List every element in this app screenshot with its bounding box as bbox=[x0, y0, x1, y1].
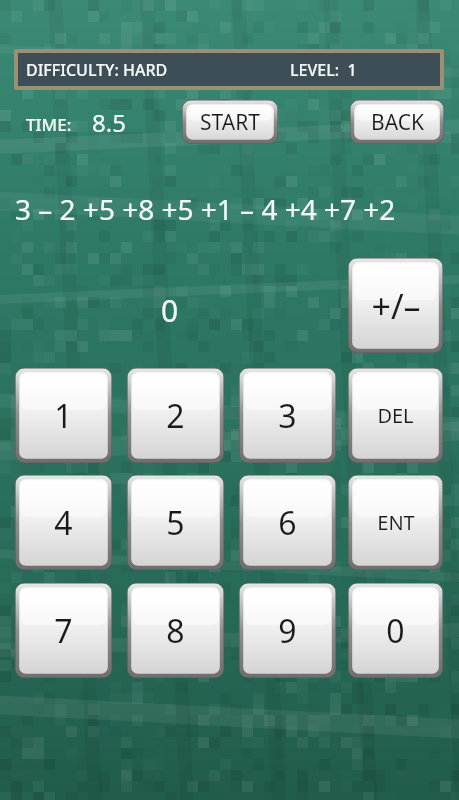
button[interactable]: 3 bbox=[239, 368, 336, 463]
staticText: BACK bbox=[371, 108, 424, 137]
staticText: 2 bbox=[166, 394, 185, 438]
staticText: 5 bbox=[166, 501, 185, 545]
staticText: 9 bbox=[278, 609, 297, 653]
button[interactable]: 0 bbox=[348, 583, 443, 678]
staticText: 4 bbox=[54, 501, 73, 545]
button[interactable]: DEL bbox=[348, 368, 443, 463]
staticText: 7 bbox=[54, 609, 73, 653]
staticText: START bbox=[200, 108, 260, 137]
staticText: +/– bbox=[371, 283, 421, 329]
button[interactable]: BACK bbox=[350, 100, 444, 144]
button[interactable]: 4 bbox=[15, 475, 112, 570]
staticText: 3 bbox=[278, 394, 297, 438]
staticText: TIME: bbox=[26, 113, 72, 136]
button[interactable]: 2 bbox=[127, 368, 224, 463]
button[interactable]: START bbox=[182, 100, 278, 144]
button[interactable]: 6 bbox=[239, 475, 336, 570]
button[interactable]: 7 bbox=[15, 583, 112, 678]
button[interactable]: Toggle sign bbox=[348, 258, 443, 353]
button[interactable]: ENT bbox=[348, 475, 443, 570]
staticText: 0 bbox=[161, 290, 179, 331]
button[interactable]: 5 bbox=[127, 475, 224, 570]
staticText: LEVEL: 1 bbox=[290, 59, 357, 81]
staticText: 3 – 2 +5 +8 +5 +1 – 4 +4 +7 +2 bbox=[15, 190, 396, 228]
staticText: DIFFICULTY: HARD bbox=[26, 59, 168, 81]
staticText: 0 bbox=[386, 609, 405, 653]
staticText: DEL bbox=[377, 402, 414, 429]
staticText: 1 bbox=[54, 394, 73, 438]
staticText: 8.5 bbox=[92, 106, 126, 139]
staticText: 6 bbox=[278, 501, 297, 545]
staticText: ENT bbox=[377, 509, 415, 536]
staticText: 8 bbox=[166, 609, 185, 653]
button[interactable]: 1 bbox=[15, 368, 112, 463]
button[interactable]: 8 bbox=[127, 583, 224, 678]
button[interactable]: 9 bbox=[239, 583, 336, 678]
